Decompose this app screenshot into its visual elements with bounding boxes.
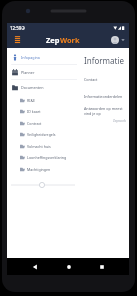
button[interactable]: Documenten — [7, 80, 77, 94]
staticText: Infopagina — [21, 55, 40, 60]
button[interactable]: Back — [28, 260, 41, 273]
staticText: RI&E — [27, 98, 36, 103]
staticText: Zepwork — [113, 119, 126, 123]
staticText: Work — [60, 35, 80, 45]
button[interactable]: Informatieonderdelen — [84, 94, 123, 99]
button[interactable]: Planner — [7, 65, 77, 79]
staticText: Antwoorden op meest vind je op — [84, 106, 123, 116]
staticText: Planner — [21, 70, 35, 75]
staticText: Informatie — [84, 55, 124, 66]
button[interactable]: Loonheffingsverklaring — [7, 152, 77, 163]
button[interactable]: Machtigingen — [7, 164, 77, 175]
staticText: Machtigingen — [27, 167, 51, 172]
button[interactable]: RI&E — [7, 95, 77, 106]
button[interactable]: Contract — [7, 118, 77, 129]
staticText: Documenten — [21, 85, 44, 90]
staticText: Veiligheidsregels — [27, 132, 56, 137]
button[interactable]: Volmacht huis — [7, 141, 77, 152]
button[interactable]: Infopagina — [7, 50, 77, 64]
button[interactable]: Recent apps — [95, 260, 108, 273]
staticText: Loonheffingsverklaring — [27, 155, 67, 160]
staticText: Zep — [46, 35, 60, 45]
button[interactable]: Home — [62, 260, 75, 273]
button[interactable]: Account — [111, 36, 119, 44]
staticText: Contract — [27, 121, 42, 126]
button[interactable]: Veiligheidsregels — [7, 129, 77, 140]
button[interactable]: Contact — [84, 77, 98, 82]
staticText: 12:59 — [10, 25, 22, 31]
button[interactable]: Open menu — [12, 34, 23, 45]
button[interactable]: ID kaart — [7, 106, 77, 117]
staticText: ID kaart — [27, 109, 41, 114]
staticText: Volmacht huis — [27, 144, 51, 149]
